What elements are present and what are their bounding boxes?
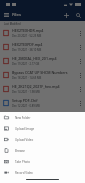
staticText: Dec 19 2021 · 2.17 GB xyxy=(12,62,40,66)
staticText: Upload Video xyxy=(15,138,34,142)
button[interactable]: Take Photo xyxy=(0,156,85,167)
staticText: Dec 20 2021 · 52.25 MB xyxy=(12,34,42,38)
staticText: Browse xyxy=(15,149,25,153)
staticText: HEX2TEXPDF.mp4 xyxy=(12,42,43,47)
staticText: Upload Image xyxy=(15,127,35,131)
button[interactable]: Search xyxy=(72,9,84,21)
button[interactable]: More options xyxy=(75,28,85,38)
staticText: Setup PDF-Chif xyxy=(12,98,38,103)
staticText: New Folder xyxy=(15,116,31,120)
button[interactable]: Setup PDF-Chif xyxy=(0,96,85,110)
staticText: HEX2TEXHDR.mp4 xyxy=(12,28,44,33)
staticText: Take Photo xyxy=(15,160,30,164)
staticText: Dec 18 2021 · 14.65 MB xyxy=(12,76,42,80)
button[interactable]: Upload Image xyxy=(0,123,85,134)
button[interactable]: More options xyxy=(75,98,85,108)
button[interactable]: Menu xyxy=(0,9,12,21)
staticText: Bypass CCAT UP SHCM Numbers xyxy=(12,70,68,75)
button[interactable]: HE_2MDIAL_HEX_201.mp4 xyxy=(0,54,85,68)
button[interactable]: Add xyxy=(60,9,72,21)
button[interactable]: More options xyxy=(75,42,85,52)
staticText: HE_2MDIAL_HEX_201.mp4 xyxy=(12,56,57,61)
staticText: Files xyxy=(12,12,21,18)
staticText: Record Video xyxy=(15,171,33,175)
staticText: Dec 14 2021 · 1.98 MB xyxy=(12,90,40,94)
staticText: Dec 19 2021 · 38.10 MB xyxy=(12,48,42,52)
button[interactable]: HEX2TEXPDF.mp4 xyxy=(0,40,85,54)
button[interactable]: HE_2K21Q2_2021F_hex.mp4 xyxy=(0,82,85,96)
button[interactable]: Bypass CCAT UP SHCM Numbers xyxy=(0,68,85,82)
button[interactable]: Upload Video xyxy=(0,134,85,145)
staticText: Last Modified xyxy=(4,22,21,26)
button[interactable]: New Folder xyxy=(0,112,85,123)
staticText: Dec 12 2021 · 0.89 MB xyxy=(12,104,40,108)
button[interactable]: Record Video xyxy=(0,167,85,178)
button[interactable]: Browse xyxy=(0,145,85,156)
button[interactable]: More options xyxy=(75,84,85,94)
button[interactable]: HEX2TEXHDR.mp4 xyxy=(0,26,85,40)
button[interactable]: More options xyxy=(75,56,85,66)
button[interactable]: More options xyxy=(75,70,85,80)
staticText: HE_2K21Q2_2021F_hex.mp4 xyxy=(12,84,60,89)
